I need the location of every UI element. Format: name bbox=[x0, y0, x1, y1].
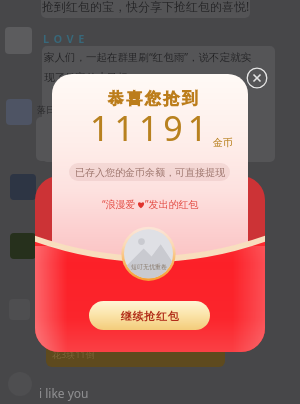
staticText: 11191 bbox=[90, 105, 213, 151]
staticText: LOVE bbox=[43, 31, 89, 46]
staticText: 继续抢红包 bbox=[120, 309, 179, 323]
staticText: 花3块11倒 bbox=[52, 348, 95, 360]
staticText: 落日 bbox=[37, 104, 55, 115]
staticText: i like you bbox=[39, 385, 89, 401]
staticText: 恭喜您抢到 bbox=[56, 89, 252, 109]
staticText: 金币 bbox=[213, 136, 233, 149]
button[interactable]: Close dialog bbox=[246, 67, 268, 89]
staticText: “浪漫爱 bbox=[102, 197, 136, 211]
staticText: 抢到红包的宝，快分享下抢红包的喜悦! bbox=[42, 0, 250, 14]
staticText: ”发出的红包 bbox=[145, 197, 199, 211]
button[interactable]: 继续抢红包 bbox=[89, 301, 210, 330]
staticText: 短叮无忧重卷 bbox=[131, 263, 167, 271]
staticText: 家人们，一起在群里刷“红包雨”，说不定就实 现了暴富的小目标 bbox=[44, 50, 252, 84]
staticText: 已存入您的金币余额，可直接提现 bbox=[75, 166, 225, 179]
